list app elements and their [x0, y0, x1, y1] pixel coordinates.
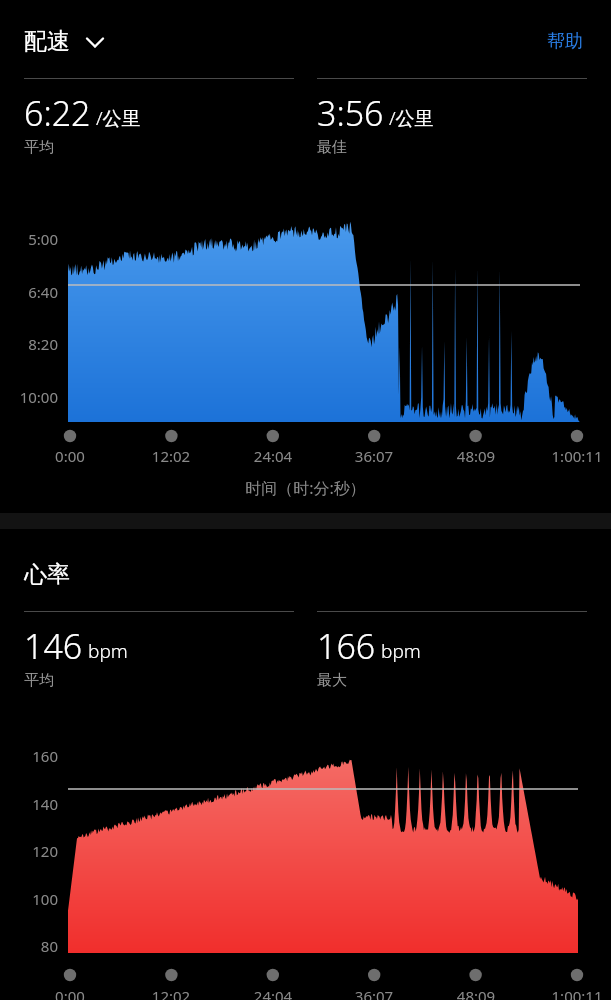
- staticText: 120: [0, 841, 58, 861]
- staticText: 80: [0, 936, 58, 956]
- staticText: 10:00: [0, 387, 58, 407]
- staticText: 24:04: [223, 446, 323, 466]
- staticText: 36:07: [324, 986, 424, 1000]
- staticText: 1:00:11: [527, 446, 611, 466]
- staticText: 3:56: [317, 90, 384, 136]
- staticText: 平均: [24, 671, 54, 690]
- staticText: 5:00: [0, 229, 58, 249]
- staticText: /公里: [389, 105, 434, 131]
- staticText: 0:00: [20, 446, 120, 466]
- staticText: 146: [24, 623, 83, 669]
- staticText: 6:22: [24, 90, 91, 136]
- staticText: 配速: [24, 27, 70, 56]
- staticText: 36:07: [324, 446, 424, 466]
- staticText: /公里: [96, 105, 141, 131]
- staticText: 160: [0, 746, 58, 766]
- staticText: 24:04: [223, 986, 323, 1000]
- staticText: 帮助: [547, 30, 583, 53]
- staticText: 最佳: [317, 138, 347, 157]
- button[interactable]: 配速: [24, 27, 112, 56]
- staticText: 8:20: [0, 334, 58, 354]
- staticText: 100: [0, 889, 58, 909]
- staticText: 12:02: [121, 986, 221, 1000]
- staticText: 140: [0, 794, 58, 814]
- staticText: bpm: [88, 638, 128, 664]
- staticText: bpm: [381, 638, 421, 664]
- staticText: 最大: [317, 671, 347, 690]
- staticText: 平均: [24, 138, 54, 157]
- staticText: 12:02: [121, 446, 221, 466]
- staticText: 6:40: [0, 282, 58, 302]
- staticText: 1:00:11: [527, 986, 611, 1000]
- staticText: 166: [317, 623, 376, 669]
- staticText: 时间（时:分:秒）: [0, 477, 611, 499]
- staticText: 48:09: [426, 446, 526, 466]
- staticText: 0:00: [20, 986, 120, 1000]
- button[interactable]: 帮助: [543, 26, 587, 57]
- staticText: 48:09: [426, 986, 526, 1000]
- staticText: 心率: [24, 560, 70, 589]
